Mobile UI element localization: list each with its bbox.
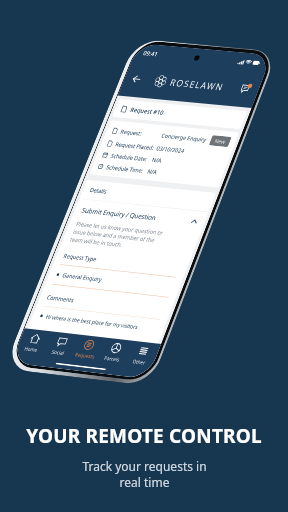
staticText: Request #10 [57,156,141,175]
staticText: ROSELAWN [128,80,263,109]
staticText: Schedule Date: [54,266,146,284]
staticText: Please let us know your question or issu… [36,427,268,481]
staticText: Request: [54,209,108,227]
staticText: YOUR REMOTE CONTROL [26,423,262,449]
staticText: 03/10/2024 [158,239,228,257]
staticText: Details [36,348,78,366]
staticText: Request Placed: [54,239,151,257]
staticText: Track your requests in real time [82,458,207,490]
button[interactable]: Request #10 [18,144,288,187]
staticText: Concierge Enquiry [158,209,270,227]
staticText: N/A [158,266,182,284]
staticText: N/A [158,293,182,311]
staticText: Schedule Time: [54,293,147,311]
